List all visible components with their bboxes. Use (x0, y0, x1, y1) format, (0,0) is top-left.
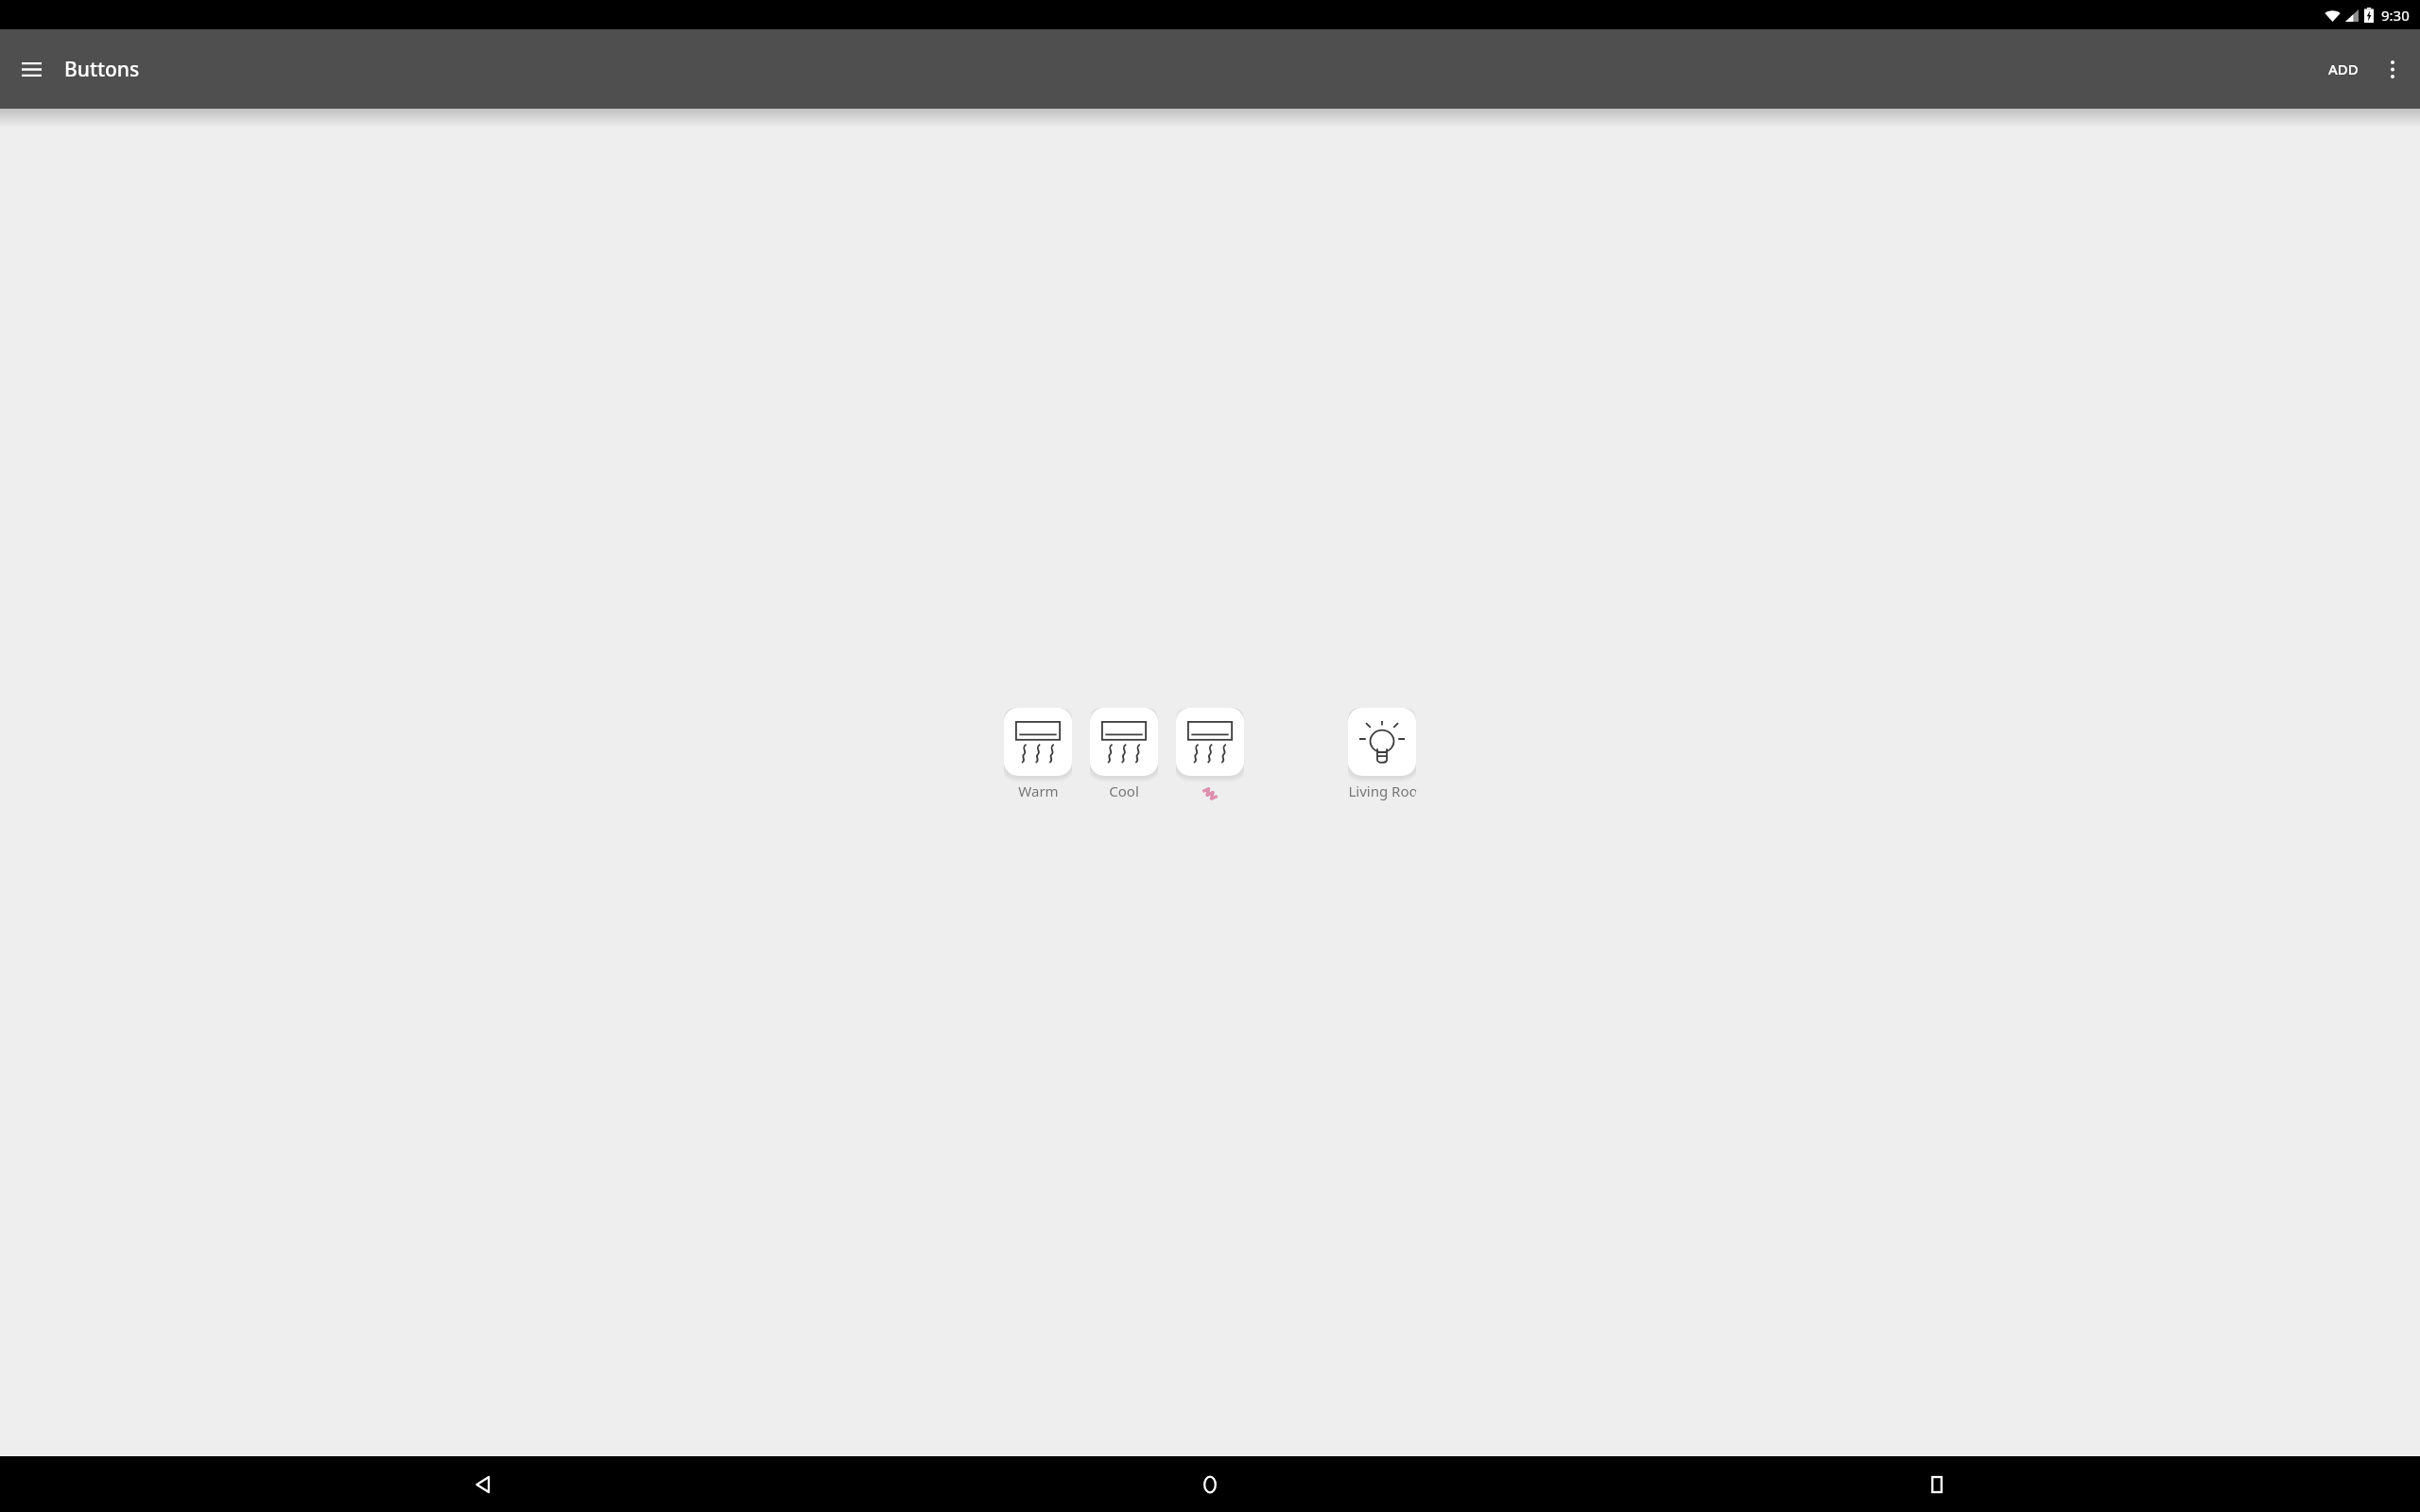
staticText: Living Room (1348, 782, 1416, 800)
staticText: Warm (1018, 782, 1059, 800)
button[interactable]: Air conditioner (1176, 708, 1244, 806)
button[interactable]: Back (460, 1462, 506, 1507)
button[interactable]: ADD (2315, 48, 2372, 90)
button[interactable]: Living Room (1348, 708, 1416, 800)
button[interactable]: More options (2372, 48, 2413, 90)
button[interactable]: Warm (1004, 708, 1072, 800)
staticText: Buttons (64, 56, 140, 83)
staticText: 9:30 (2381, 6, 2410, 25)
button[interactable]: Recent apps (1914, 1462, 1960, 1507)
staticText: ADD (2328, 60, 2359, 78)
button[interactable]: Open navigation drawer (9, 47, 53, 91)
button[interactable]: Home (1187, 1462, 1233, 1507)
staticText: Cool (1109, 782, 1139, 800)
button[interactable]: Cool (1090, 708, 1158, 800)
